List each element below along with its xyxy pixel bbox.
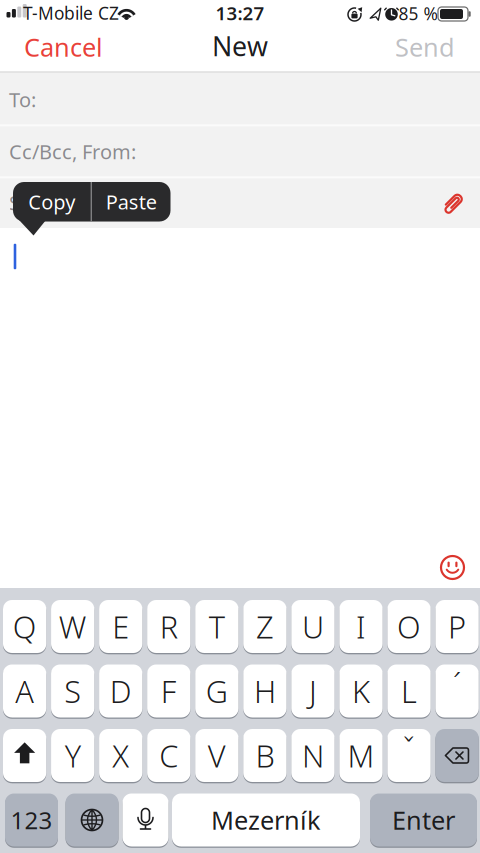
button[interactable]: N xyxy=(291,728,335,783)
staticText: Y xyxy=(65,735,81,776)
button[interactable]: Copy xyxy=(13,182,90,221)
button[interactable]: Send xyxy=(395,30,455,64)
staticText: ´ xyxy=(453,664,461,704)
staticText: Cancel xyxy=(24,30,103,64)
button[interactable]: Insert emoji xyxy=(440,555,465,580)
staticText: C xyxy=(159,735,178,776)
staticText: 13:27 xyxy=(215,1,264,25)
staticText: I xyxy=(356,606,366,647)
staticText: Copy xyxy=(28,188,75,215)
staticText: Q xyxy=(13,606,37,647)
button[interactable]: Delete xyxy=(435,728,479,783)
staticText: W xyxy=(59,606,87,647)
button[interactable]: D xyxy=(99,664,142,718)
button[interactable]: E xyxy=(99,599,142,654)
staticText: U xyxy=(302,606,324,647)
staticText: L xyxy=(401,671,417,711)
button[interactable]: Y xyxy=(51,728,94,783)
button[interactable]: Cancel xyxy=(24,30,103,64)
button[interactable]: V xyxy=(195,728,238,783)
button[interactable]: To: xyxy=(0,74,480,124)
button[interactable]: Dictation xyxy=(122,793,168,847)
staticText: S xyxy=(64,671,81,711)
button[interactable]: Q xyxy=(3,599,46,654)
staticText: 123 xyxy=(10,804,52,836)
button[interactable]: Enter xyxy=(370,793,477,847)
button[interactable]: R xyxy=(147,599,190,654)
button[interactable]: Paste xyxy=(93,182,170,221)
staticText: H xyxy=(254,671,276,711)
staticText: D xyxy=(110,671,132,711)
staticText: Enter xyxy=(392,803,455,837)
staticText: J xyxy=(309,671,317,711)
button[interactable]: Subject xyxy=(0,177,480,227)
staticText: R xyxy=(160,606,178,647)
staticText: V xyxy=(208,735,226,776)
button[interactable]: A xyxy=(3,664,46,718)
staticText: N xyxy=(302,735,324,776)
button[interactable]: T xyxy=(195,599,238,654)
button[interactable]: K xyxy=(339,664,383,718)
button[interactable]: F xyxy=(147,664,190,718)
staticText: M xyxy=(347,735,374,776)
button[interactable]: ˇ xyxy=(387,728,431,783)
staticText: Send xyxy=(395,30,455,64)
button[interactable]: S xyxy=(51,664,94,718)
button[interactable]: Mezerník xyxy=(172,793,360,847)
button[interactable]: Cc/Bcc, From: xyxy=(0,126,480,176)
staticText: ˇ xyxy=(403,728,415,769)
staticText: A xyxy=(15,671,34,711)
button[interactable]: U xyxy=(291,599,335,654)
staticText: O xyxy=(397,606,421,647)
button[interactable]: P xyxy=(435,599,479,654)
button[interactable]: X xyxy=(99,728,142,783)
staticText: To: xyxy=(9,86,36,113)
staticText: K xyxy=(352,671,370,711)
staticText: 85 % xyxy=(398,2,437,25)
staticText: T xyxy=(209,606,225,647)
staticText: P xyxy=(448,606,466,647)
button[interactable]: O xyxy=(387,599,431,654)
button[interactable]: C xyxy=(147,728,190,783)
staticText: E xyxy=(112,606,129,647)
button[interactable]: ´ xyxy=(435,664,479,718)
staticText: Mezerník xyxy=(211,803,321,837)
button[interactable]: J xyxy=(291,664,335,718)
button[interactable]: I xyxy=(339,599,383,654)
button[interactable]: W xyxy=(51,599,94,654)
button[interactable]: 123 xyxy=(5,793,58,847)
button[interactable]: Next keyboard xyxy=(65,793,118,847)
staticText: Cc/Bcc, From: xyxy=(9,138,136,165)
button[interactable]: B xyxy=(243,728,286,783)
staticText: F xyxy=(161,671,177,711)
button[interactable]: M xyxy=(339,728,383,783)
staticText: Paste xyxy=(106,188,157,215)
button[interactable]: Z xyxy=(243,599,286,654)
button[interactable]: L xyxy=(387,664,431,718)
staticText: B xyxy=(255,735,274,776)
button[interactable]: G xyxy=(195,664,238,718)
button[interactable]: H xyxy=(243,664,286,718)
staticText: T-Mobile CZ xyxy=(23,1,119,24)
staticText: Z xyxy=(256,606,274,647)
staticText: Subject xyxy=(9,189,77,216)
staticText: G xyxy=(206,671,228,711)
staticText: X xyxy=(112,735,129,776)
staticText: New xyxy=(212,28,268,64)
button[interactable]: Shift xyxy=(3,728,46,783)
